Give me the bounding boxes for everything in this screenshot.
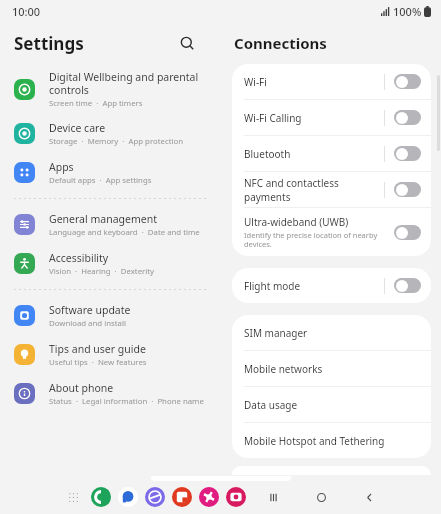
- staticText: Default apps · App settings: [49, 175, 152, 186]
- button[interactable]: Toggle: [394, 146, 421, 161]
- button[interactable]: Home: [310, 486, 332, 508]
- button[interactable]: About phone: [0, 374, 222, 413]
- button[interactable]: NFC and contactless payments: [232, 172, 431, 207]
- staticText: Vision · Hearing · Dexterity: [49, 266, 155, 277]
- button[interactable]: Apps: [0, 153, 222, 192]
- button[interactable]: Camera: [226, 487, 246, 507]
- button[interactable]: Back: [358, 486, 380, 508]
- staticText: Identify the precise location of nearby …: [244, 230, 378, 250]
- button[interactable]: Search settings: [172, 28, 202, 58]
- staticText: Digital Wellbeing and parental controls: [49, 70, 199, 97]
- button[interactable]: Device care: [0, 114, 222, 153]
- button[interactable]: Gallery: [199, 487, 219, 507]
- staticText: Accessibility: [49, 251, 109, 265]
- staticText: Bluetooth: [244, 147, 291, 161]
- staticText: Settings: [14, 32, 84, 55]
- button[interactable]: Wi-Fi Calling: [232, 100, 431, 135]
- button[interactable]: Mobile Hotspot and Tethering: [232, 423, 431, 458]
- staticText: Wi-Fi: [244, 75, 267, 89]
- staticText: Screen time · App timers: [49, 98, 143, 109]
- button[interactable]: Ultra-wideband (UWB): [232, 208, 431, 256]
- button[interactable]: Toggle: [394, 182, 421, 197]
- button[interactable]: Mobile networks: [232, 351, 431, 386]
- button[interactable]: Bluetooth: [232, 136, 431, 171]
- staticText: Download and install: [49, 318, 126, 329]
- staticText: Storage · Memory · App protection: [49, 136, 184, 147]
- staticText: Tips and user guide: [49, 342, 146, 356]
- button[interactable]: Data usage: [232, 387, 431, 422]
- staticText: Software update: [49, 303, 131, 317]
- staticText: Flight mode: [244, 279, 301, 293]
- staticText: Language and keyboard · Date and time: [49, 227, 200, 238]
- button[interactable]: General management: [0, 205, 222, 244]
- button[interactable]: Notes: [172, 487, 192, 507]
- button[interactable]: SIM manager: [232, 315, 431, 350]
- staticText: Status · Legal information · Phone name: [49, 396, 204, 407]
- button[interactable]: Flight mode: [232, 268, 431, 303]
- staticText: 100%: [393, 4, 422, 19]
- staticText: Mobile networks: [244, 362, 323, 376]
- staticText: General management: [49, 212, 157, 226]
- staticText: Mobile Hotspot and Tethering: [244, 434, 385, 448]
- button[interactable]: Accessibility: [0, 244, 222, 283]
- button[interactable]: App drawer: [62, 486, 84, 508]
- staticText: About phone: [49, 381, 114, 395]
- button[interactable]: Recents: [262, 486, 284, 508]
- button[interactable]: Internet: [145, 487, 165, 507]
- staticText: NFC and contactless payments: [244, 176, 384, 204]
- button[interactable]: Toggle: [394, 110, 421, 125]
- button[interactable]: Digital Wellbeing and parental controls: [0, 64, 222, 114]
- staticText: Ultra-wideband (UWB): [244, 215, 349, 229]
- staticText: Useful tips · New features: [49, 357, 147, 368]
- button[interactable]: Toggle: [394, 225, 421, 240]
- staticText: Apps: [49, 160, 74, 174]
- button[interactable]: Messages: [118, 487, 138, 507]
- staticText: Wi-Fi Calling: [244, 111, 302, 125]
- button[interactable]: Tips and user guide: [0, 335, 222, 374]
- staticText: Data usage: [244, 398, 298, 412]
- staticText: SIM manager: [244, 326, 308, 340]
- button[interactable]: Toggle: [394, 278, 421, 293]
- button[interactable]: Software update: [0, 296, 222, 335]
- staticText: Connections: [234, 33, 327, 53]
- staticText: 10:00: [12, 4, 41, 19]
- button[interactable]: Wi-Fi: [232, 64, 431, 99]
- button[interactable]: Phone: [91, 487, 111, 507]
- staticText: Device care: [49, 121, 106, 135]
- button[interactable]: Toggle: [394, 74, 421, 89]
